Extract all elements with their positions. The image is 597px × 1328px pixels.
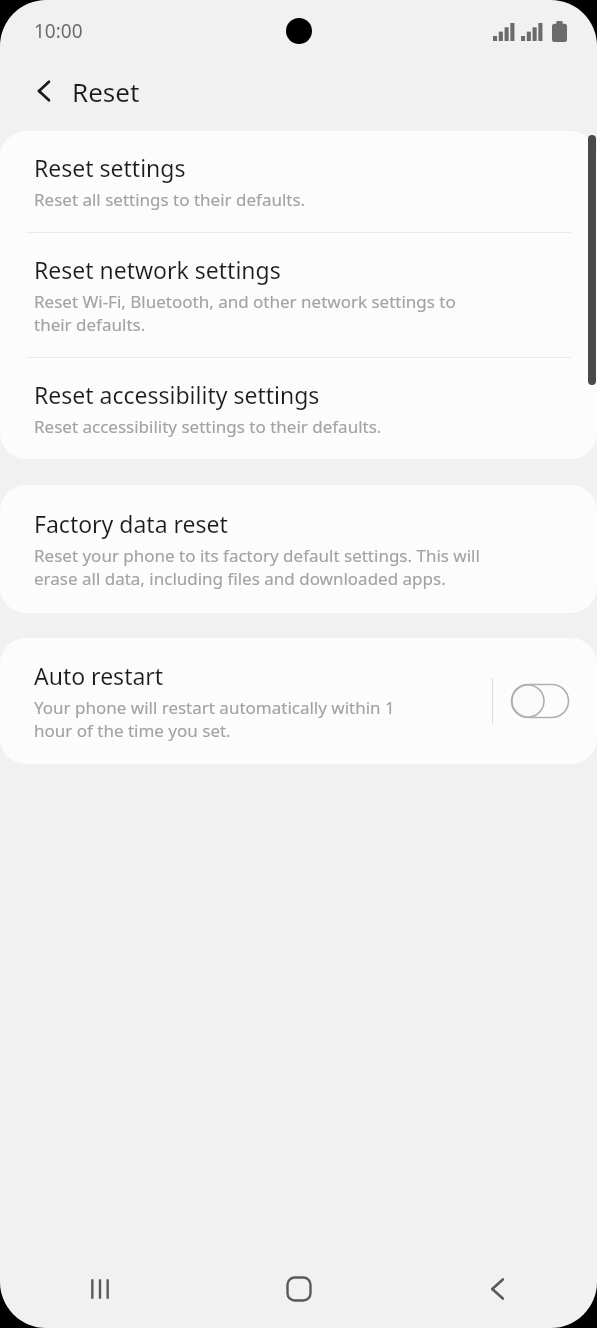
button[interactable]: Auto restart toggle bbox=[511, 684, 569, 718]
button[interactable]: Factory data reset bbox=[0, 485, 597, 613]
button[interactable]: Recent apps bbox=[0, 1250, 199, 1328]
staticText: Reset Wi-Fi, Bluetooth, and other networ… bbox=[34, 290, 456, 313]
button[interactable]: Home bbox=[199, 1250, 398, 1328]
button[interactable]: Reset accessibility settings bbox=[0, 358, 597, 459]
staticText: Auto restart bbox=[34, 660, 164, 691]
staticText: Reset your phone to its factory default … bbox=[34, 544, 480, 567]
button[interactable]: Reset network settings bbox=[0, 233, 597, 357]
button[interactable]: Back bbox=[398, 1250, 597, 1328]
staticText: Reset bbox=[72, 74, 140, 109]
staticText: Factory data reset bbox=[34, 508, 228, 539]
staticText: Reset settings bbox=[34, 152, 186, 183]
button[interactable]: Auto restart bbox=[0, 638, 597, 764]
staticText: Reset network settings bbox=[34, 254, 281, 285]
button[interactable]: Back bbox=[22, 69, 66, 113]
staticText: hour of the time you set. bbox=[34, 719, 231, 742]
staticText: Your phone will restart automatically wi… bbox=[34, 696, 395, 719]
staticText: 10:00 bbox=[34, 18, 83, 44]
staticText: Reset accessibility settings bbox=[34, 379, 320, 410]
button[interactable]: Reset settings bbox=[0, 131, 597, 232]
staticText: their defaults. bbox=[34, 313, 146, 336]
staticText: erase all data, including files and down… bbox=[34, 567, 446, 590]
staticText: Reset accessibility settings to their de… bbox=[34, 415, 382, 438]
staticText: Reset all settings to their defaults. bbox=[34, 188, 306, 211]
